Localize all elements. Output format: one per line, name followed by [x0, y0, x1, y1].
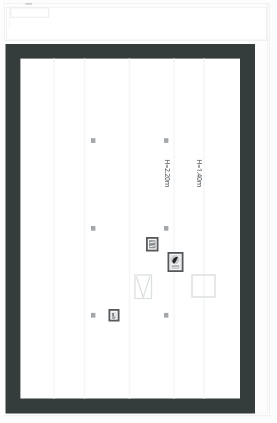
button[interactable]: Photo marker: [168, 252, 184, 272]
button[interactable]: Document marker: [146, 237, 159, 252]
button[interactable]: Fixture marker: [109, 309, 120, 322]
